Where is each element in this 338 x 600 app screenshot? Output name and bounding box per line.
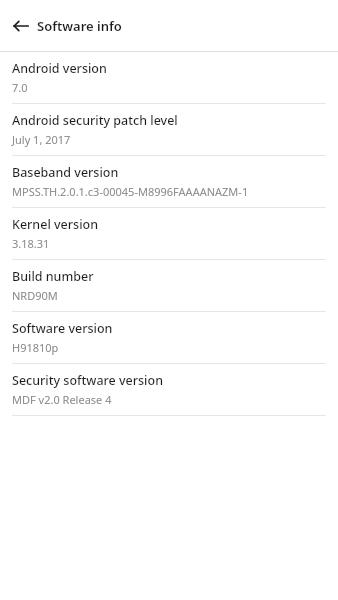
button[interactable]: Software version bbox=[0, 312, 338, 364]
staticText: Android version bbox=[12, 60, 107, 77]
button[interactable]: Security software version bbox=[0, 364, 338, 416]
button[interactable]: Android version bbox=[0, 52, 338, 104]
button[interactable]: Android security patch level bbox=[0, 104, 338, 156]
staticText: Kernel version bbox=[12, 216, 98, 233]
staticText: Build number bbox=[12, 268, 94, 285]
button[interactable]: Back bbox=[6, 11, 36, 41]
button[interactable]: Kernel version bbox=[0, 208, 338, 260]
button[interactable]: Build number bbox=[0, 260, 338, 312]
staticText: NRD90M bbox=[12, 288, 58, 303]
staticText: 3.18.31 bbox=[12, 236, 50, 251]
staticText: H91810p bbox=[12, 340, 59, 355]
button[interactable]: Baseband version bbox=[0, 156, 338, 208]
staticText: Security software version bbox=[12, 372, 163, 389]
staticText: Software version bbox=[12, 320, 113, 337]
staticText: Android security patch level bbox=[12, 112, 178, 129]
staticText: MDF v2.0 Release 4 bbox=[12, 392, 112, 407]
staticText: MPSS.TH.2.0.1.c3-00045-M8996FAAAANAZM-1 bbox=[12, 184, 249, 199]
staticText: Baseband version bbox=[12, 164, 119, 181]
staticText: July 1, 2017 bbox=[12, 132, 71, 147]
staticText: Software info bbox=[37, 17, 122, 35]
staticText: 7.0 bbox=[12, 80, 28, 95]
